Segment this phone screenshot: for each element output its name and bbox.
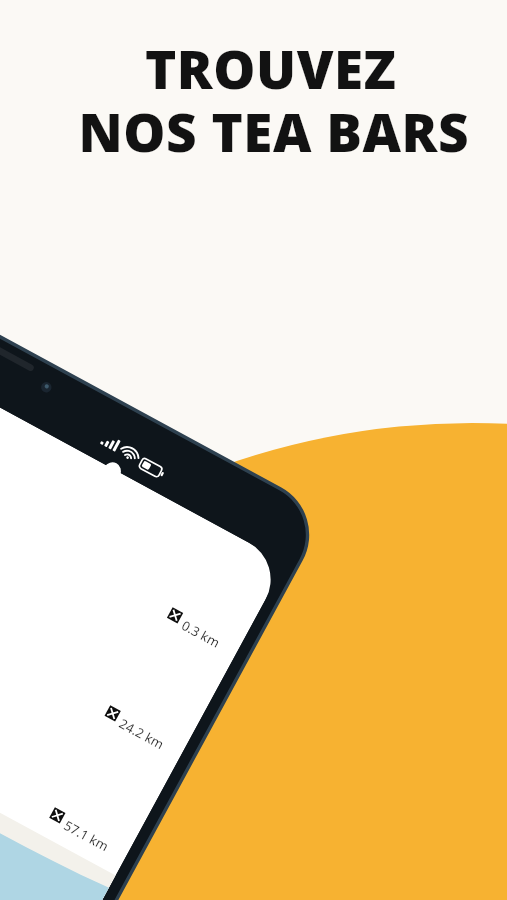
other: Tea Bars store locator preview — [0, 0, 507, 900]
button[interactable]: Tea Bars store locator preview — [0, 0, 507, 900]
